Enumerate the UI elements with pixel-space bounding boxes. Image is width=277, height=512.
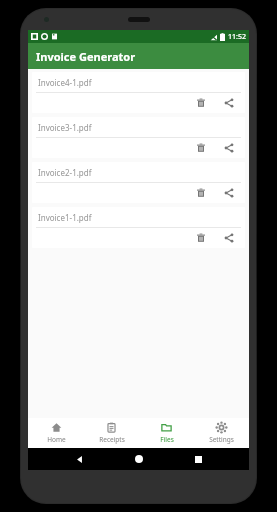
- staticText: Home: [47, 435, 66, 444]
- staticText: Invoice Generator: [36, 49, 136, 64]
- button[interactable]: Delete: [191, 138, 211, 158]
- button[interactable]: Share: [219, 183, 239, 203]
- button[interactable]: Receipts: [84, 418, 139, 448]
- staticText: Invoice1-1.pdf: [38, 212, 92, 223]
- staticText: Files: [160, 435, 174, 444]
- button[interactable]: Recent apps: [189, 450, 207, 468]
- staticText: Settings: [209, 435, 234, 444]
- button[interactable]: Invoice4-1.pdf: [32, 72, 245, 113]
- staticText: Invoice3-1.pdf: [38, 122, 92, 133]
- button[interactable]: Back: [70, 450, 88, 468]
- button[interactable]: Invoice1-1.pdf: [32, 207, 245, 248]
- button[interactable]: Delete: [191, 183, 211, 203]
- button[interactable]: Share: [219, 228, 239, 248]
- button[interactable]: Invoice2-1.pdf: [32, 162, 245, 203]
- staticText: 11:52: [228, 32, 246, 42]
- button[interactable]: Files: [139, 418, 194, 448]
- button[interactable]: Delete: [191, 228, 211, 248]
- staticText: Receipts: [99, 435, 125, 444]
- button[interactable]: Share: [219, 93, 239, 113]
- button[interactable]: Home: [130, 450, 148, 468]
- button[interactable]: Share: [219, 138, 239, 158]
- button[interactable]: Invoice3-1.pdf: [32, 117, 245, 158]
- staticText: Invoice2-1.pdf: [38, 167, 92, 178]
- button[interactable]: Settings: [194, 418, 249, 448]
- staticText: Invoice4-1.pdf: [38, 77, 92, 88]
- button[interactable]: Home: [28, 418, 84, 448]
- button[interactable]: Delete: [191, 93, 211, 113]
